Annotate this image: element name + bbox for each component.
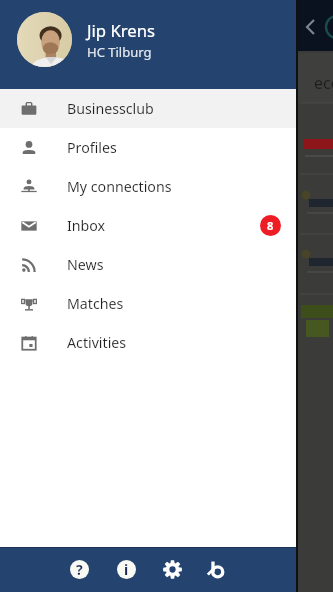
button[interactable]: Activities [0,323,296,362]
staticText: HC Tilburg [87,43,152,61]
staticText: Profiles [67,138,117,157]
button[interactable]: Inbox [0,206,296,245]
button[interactable]: Info [115,558,138,581]
button[interactable]: Settings [161,558,184,581]
button[interactable]: Matches [0,284,296,323]
staticText: My connections [67,177,172,196]
staticText: 8 [267,218,274,233]
button[interactable]: Businessclub [0,89,296,128]
button[interactable]: Profiles [0,128,296,167]
button[interactable]: My connections [0,167,296,206]
staticText: Jip Krens [87,19,156,42]
staticText: ? [76,560,83,579]
staticText: i [124,560,129,579]
button[interactable]: News [0,245,296,284]
staticText: Activities [67,333,127,352]
button[interactable]: Brand [205,558,228,581]
staticText: News [67,255,104,274]
button[interactable]: Jip Krens [0,0,296,89]
staticText: Inbox [67,216,106,235]
staticText: Businessclub [67,99,154,118]
staticText: Matches [67,294,124,313]
button[interactable]: Help [68,558,91,581]
staticText: eco [314,72,333,94]
